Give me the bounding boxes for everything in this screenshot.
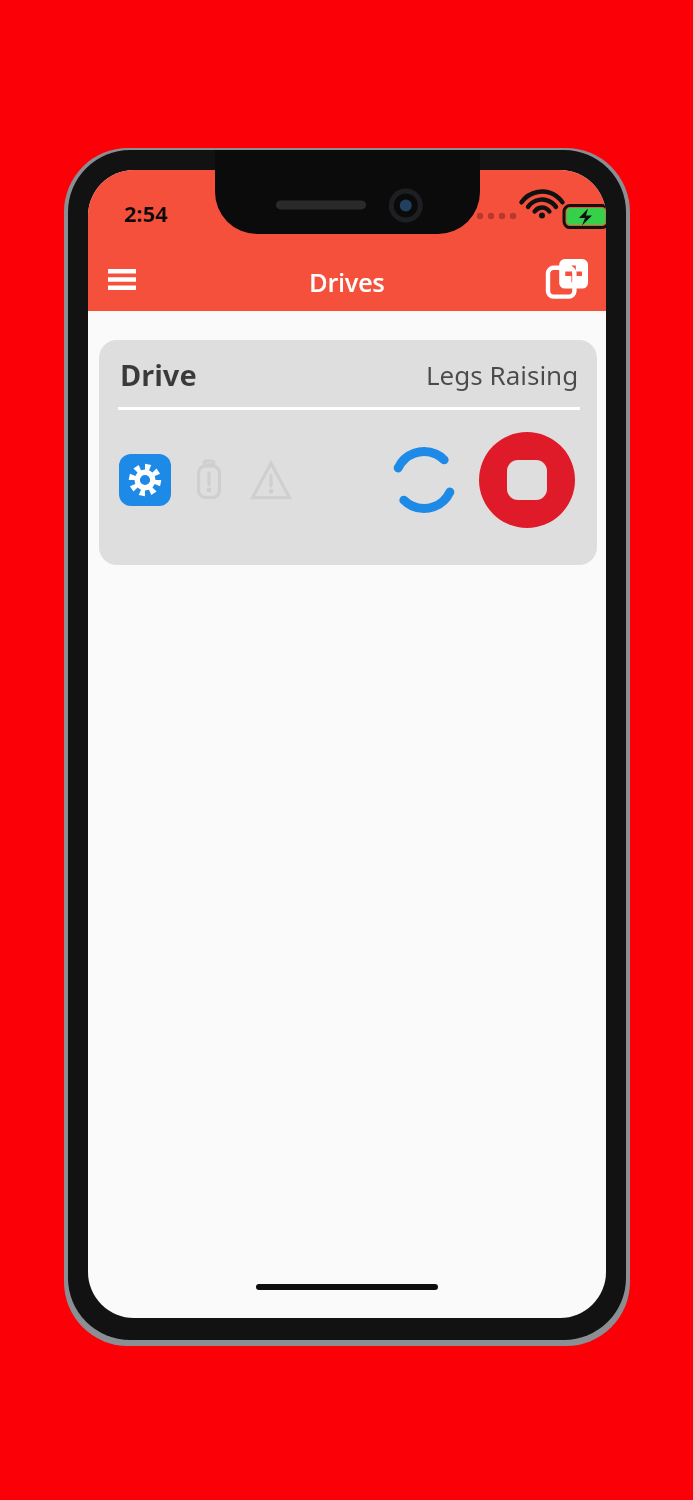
staticText: Drive [120,355,197,394]
button[interactable]: Loading [385,441,463,519]
button[interactable]: Menu [96,253,148,305]
button[interactable]: Battery warning [185,456,233,504]
staticText: Legs Raising [426,357,579,392]
staticText: Drives [309,265,385,299]
button[interactable]: Settings [119,454,171,506]
button[interactable]: Alert [245,454,297,506]
button[interactable]: Stop [479,432,575,528]
button[interactable]: Drive [99,340,597,565]
button[interactable]: Add drive [540,251,596,307]
staticText: 2:54 [124,198,168,228]
